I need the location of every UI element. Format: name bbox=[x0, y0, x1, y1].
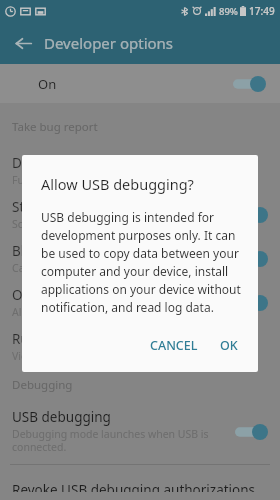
staticText: Bluetooth HCI snoop log bbox=[12, 242, 168, 260]
staticText: 17:49 bbox=[249, 4, 275, 18]
button[interactable]: Back bbox=[9, 29, 37, 57]
staticText: Full desktop backups aren't currently pr… bbox=[12, 173, 245, 187]
button[interactable]: Bluetooth HCI snoop log bbox=[0, 237, 280, 281]
staticText: View and control currently running servi… bbox=[12, 349, 229, 363]
staticText: Screen will never sleep while charging bbox=[12, 217, 199, 231]
button[interactable]: Desktop backup password bbox=[0, 149, 280, 193]
staticText: Running services bbox=[12, 330, 120, 348]
staticText: Capture all bluetooth HCI packets in a f… bbox=[12, 261, 216, 275]
staticText: Revoke USB debugging authorizations bbox=[12, 481, 256, 492]
button[interactable]: Running services bbox=[0, 325, 280, 369]
staticText: Debugging bbox=[12, 377, 73, 393]
button[interactable]: Revoke USB debugging authorizations bbox=[0, 477, 280, 500]
staticText: Debugging mode launches when USB is conn… bbox=[12, 427, 209, 454]
staticText: Stay awake bbox=[12, 198, 83, 216]
staticText: On bbox=[38, 75, 57, 93]
staticText: USB debugging is intended for developmen… bbox=[41, 209, 244, 315]
staticText: Allow the bootloader to be unlocked bbox=[12, 305, 191, 319]
staticText: Allow USB debugging? bbox=[41, 174, 194, 194]
staticText: CANCEL bbox=[150, 337, 198, 354]
button[interactable]: OK bbox=[214, 331, 244, 360]
button[interactable]: OEM unlocking bbox=[0, 281, 280, 325]
staticText: Developer options bbox=[44, 33, 174, 53]
button[interactable]: On bbox=[0, 64, 280, 103]
staticText: OK bbox=[220, 337, 238, 354]
button[interactable]: Stay awake bbox=[0, 193, 280, 237]
button[interactable]: USB debugging bbox=[0, 403, 280, 460]
staticText: USB debugging bbox=[12, 408, 111, 426]
staticText: Desktop backup password bbox=[12, 154, 179, 172]
staticText: Take bug report bbox=[12, 119, 98, 135]
staticText: OEM unlocking bbox=[12, 286, 108, 304]
button[interactable]: CANCEL bbox=[144, 331, 204, 360]
staticText: 89% bbox=[219, 5, 238, 18]
